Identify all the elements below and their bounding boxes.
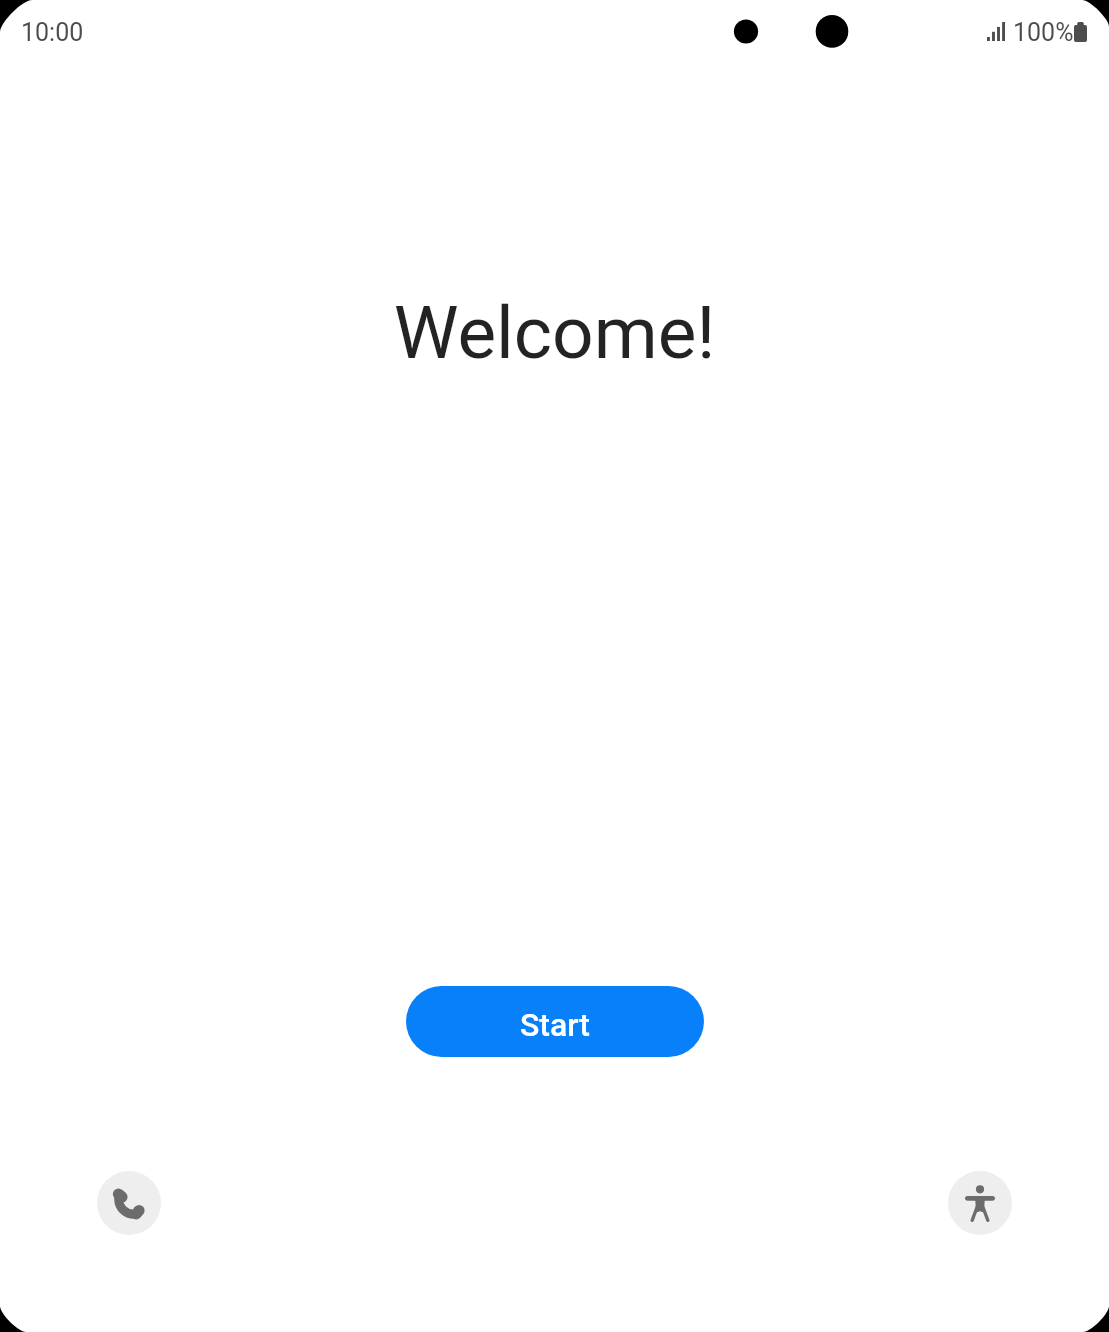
staticText: 10:00: [21, 18, 84, 47]
button[interactable]: Accessibility: [948, 1171, 1012, 1235]
staticText: 100%: [1013, 18, 1074, 47]
button[interactable]: Emergency call: [97, 1171, 161, 1235]
staticText: Start: [520, 1006, 590, 1044]
button[interactable]: Start: [406, 986, 704, 1057]
staticText: Welcome!: [0, 290, 1109, 376]
